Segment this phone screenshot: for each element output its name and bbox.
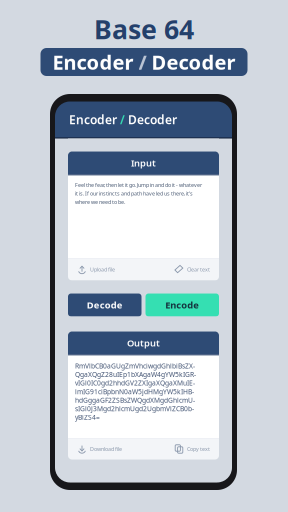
staticText: Decoder xyxy=(151,49,235,75)
staticText: Base 64 xyxy=(94,11,194,47)
staticText: Decoder xyxy=(128,111,177,127)
staticText: Encode xyxy=(165,299,199,311)
staticText: Clear text xyxy=(187,266,210,273)
button[interactable]: Encode xyxy=(145,293,219,316)
staticText: Download file xyxy=(90,445,122,453)
staticText: Upload file xyxy=(90,266,115,273)
staticText: RmVlbCB0aGUgZmVhciwgdGhlbiBsZXQgaXQgZ28u… xyxy=(75,361,196,422)
staticText: Encoder xyxy=(69,111,117,127)
staticText: Feel the fear, then let it go. Jump in a… xyxy=(75,181,202,205)
button[interactable]: Copy text xyxy=(168,439,216,459)
button[interactable]: Decode xyxy=(68,293,141,316)
staticText: Input xyxy=(131,157,156,169)
staticText: Output xyxy=(127,337,160,349)
button[interactable]: Download file xyxy=(71,439,128,459)
staticText: / xyxy=(138,49,146,75)
staticText: Copy text xyxy=(187,445,210,453)
button[interactable]: Clear text xyxy=(168,259,216,279)
staticText: Decode xyxy=(87,299,123,311)
staticText: Encoder xyxy=(52,49,133,75)
staticText: / xyxy=(120,111,125,127)
button[interactable]: Upload file xyxy=(71,259,121,279)
